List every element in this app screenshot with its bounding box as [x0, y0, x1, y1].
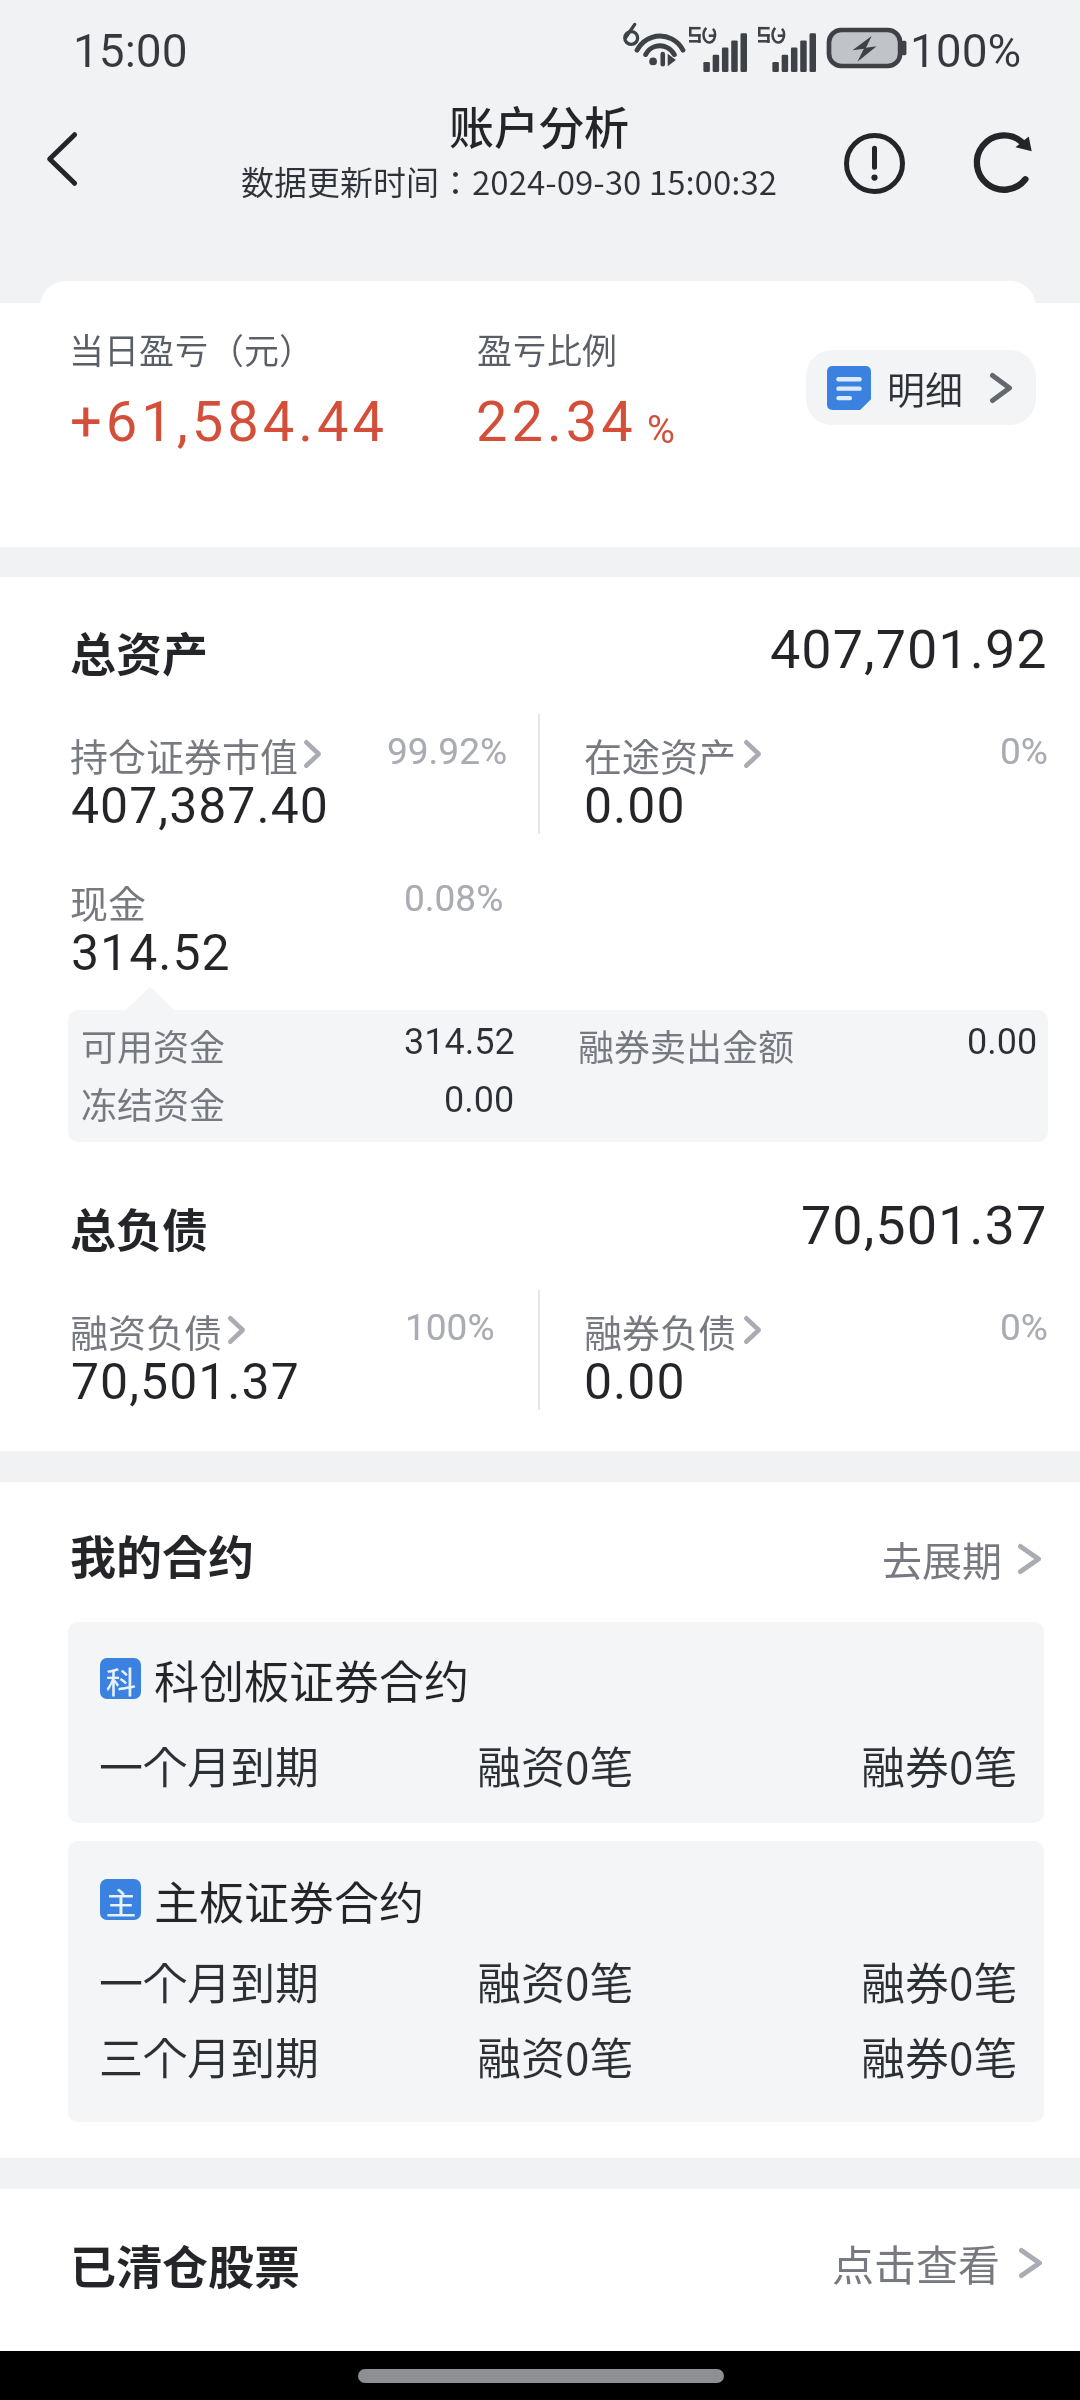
staticText: 融券0笔 [861, 2024, 1018, 2088]
staticText: 融券卖出金额 [578, 1019, 795, 1071]
staticText: 0.00 [967, 1021, 1038, 1063]
staticText: 0.08% [404, 877, 504, 920]
staticText: 0% [1000, 730, 1048, 773]
staticText: 407,701.92 [770, 618, 1048, 681]
staticText: 融券0笔 [861, 1733, 1018, 1797]
staticText: 22.34 [476, 389, 637, 455]
button[interactable] [68, 1622, 1044, 1823]
staticText: 100% [405, 1306, 495, 1349]
staticText: 70,501.37 [801, 1194, 1048, 1257]
staticText: 主 [106, 1879, 136, 1920]
staticText: 数据更新时间：2024-09-30 15:00:32 [241, 157, 778, 205]
staticText: 我的合约 [70, 1521, 254, 1588]
staticText: 一个月到期 [99, 1733, 319, 1797]
staticText: 账户分析 [449, 93, 630, 158]
staticText: 融资0笔 [477, 2024, 634, 2088]
staticText: 持仓证券市值 [70, 727, 299, 782]
staticText: 100% [910, 24, 1022, 78]
staticText: 15:00 [73, 24, 188, 78]
button[interactable] [0, 2189, 1080, 2351]
button[interactable]: Back [14, 110, 112, 208]
button[interactable]: 明细 [806, 350, 1036, 425]
staticText: 现金 [70, 874, 147, 929]
staticText: 0.00 [584, 777, 686, 836]
staticText: 三个月到期 [99, 2024, 319, 2088]
button[interactable]: Risk information [828, 117, 920, 209]
staticText: 可用资金 [81, 1019, 226, 1071]
staticText: 0% [1000, 1306, 1048, 1349]
staticText: 已清仓股票 [70, 2231, 300, 2298]
staticText: 融资负债 [70, 1303, 223, 1358]
staticText: 0.00 [584, 1353, 686, 1412]
button[interactable] [68, 1841, 1044, 2122]
staticText: % [647, 408, 675, 453]
button[interactable]: 去展期 [876, 1524, 1047, 1594]
button[interactable]: Refresh [958, 115, 1050, 207]
staticText: 0.00 [444, 1079, 515, 1121]
staticText: 314.52 [71, 924, 231, 983]
button[interactable]: 点击查看 [832, 2232, 1042, 2293]
staticText: 70,501.37 [71, 1353, 300, 1412]
staticText: 当日盈亏（元） [69, 323, 315, 374]
staticText: 99.92% [387, 730, 508, 773]
staticText: 冻结资金 [81, 1077, 226, 1129]
staticText: 明细 [887, 360, 964, 415]
staticText: 314.52 [404, 1021, 515, 1063]
staticText: 融资0笔 [477, 1949, 634, 2013]
staticText: 融券0笔 [861, 1949, 1018, 2013]
staticText: 总负债 [70, 1194, 208, 1261]
staticText: 融券负债 [584, 1303, 737, 1358]
staticText: 融资0笔 [477, 1733, 634, 1797]
staticText: 总资产 [70, 618, 208, 685]
staticText: 去展期 [882, 1530, 1002, 1588]
staticText: +61,584.44 [70, 389, 388, 455]
staticText: 主板证券合约 [154, 1868, 425, 1933]
staticText: 在途资产 [584, 727, 737, 782]
staticText: 科 [106, 1658, 136, 1699]
staticText: 一个月到期 [99, 1949, 319, 2013]
staticText: 科创板证券合约 [154, 1647, 470, 1712]
staticText: 点击查看 [832, 2232, 1001, 2293]
staticText: 407,387.40 [71, 777, 329, 836]
staticText: 盈亏比例 [477, 323, 618, 374]
